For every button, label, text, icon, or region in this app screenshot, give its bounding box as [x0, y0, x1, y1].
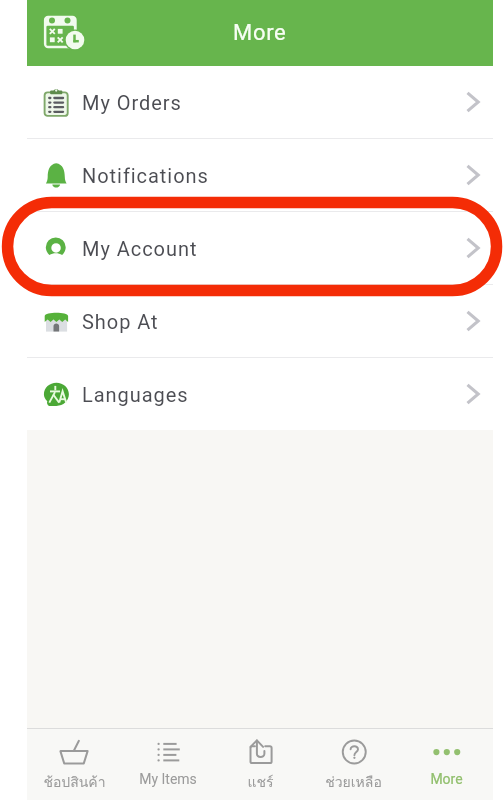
button[interactable]: Order history: [37, 10, 85, 58]
button[interactable]: แชร์: [214, 729, 307, 800]
button[interactable]: More: [400, 729, 493, 800]
staticText: Shop At: [82, 310, 159, 333]
staticText: My Account: [82, 237, 198, 260]
button[interactable]: Shop At: [27, 285, 493, 357]
button[interactable]: Notifications: [27, 139, 493, 211]
staticText: ช่วยเหลือ: [325, 771, 382, 793]
button[interactable]: ช่วยเหลือ: [307, 729, 400, 800]
staticText: More: [233, 20, 287, 46]
button[interactable]: My Account: [27, 212, 493, 284]
staticText: Notifications: [82, 164, 209, 187]
staticText: More: [430, 771, 463, 787]
button[interactable]: My Orders: [27, 66, 493, 138]
staticText: ช้อปสินค้า: [43, 771, 106, 793]
staticText: My Items: [139, 771, 197, 787]
staticText: My Orders: [82, 91, 182, 114]
button[interactable]: ช้อปสินค้า: [27, 729, 121, 800]
staticText: Languages: [82, 383, 189, 406]
button[interactable]: Languages: [27, 358, 493, 430]
button[interactable]: My Items: [121, 729, 214, 800]
staticText: แชร์: [247, 771, 274, 793]
